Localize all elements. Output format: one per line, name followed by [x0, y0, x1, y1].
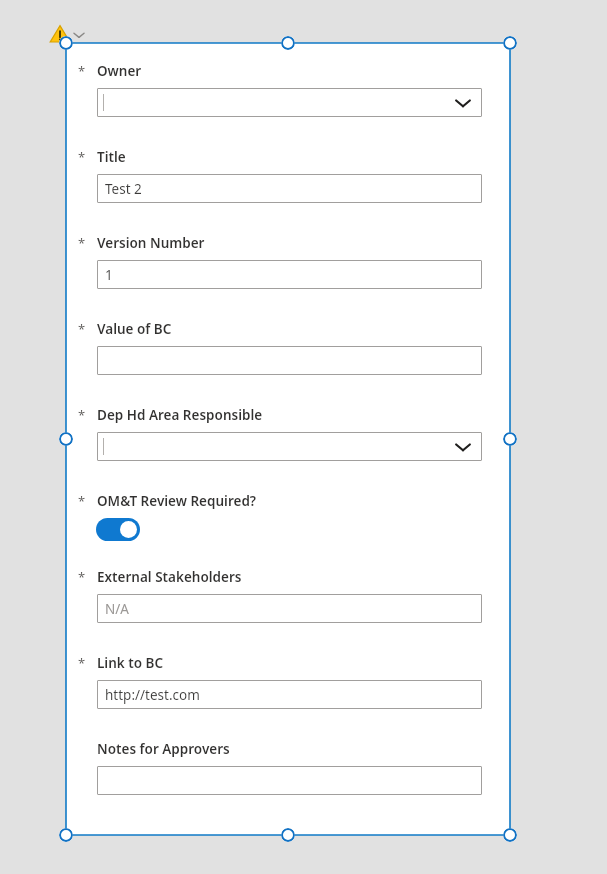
button[interactable]: OM&T Review Required toggle — [96, 518, 140, 541]
button[interactable]: Open Dep Hd Area Responsible dropdown — [97, 432, 482, 461]
button[interactable]: Open Owner dropdown — [454, 94, 472, 112]
staticText: Notes for Approvers — [97, 740, 230, 758]
button[interactable] — [97, 346, 482, 375]
button[interactable]: N/A — [97, 594, 482, 623]
staticText: N/A — [105, 600, 129, 618]
staticText: * — [78, 406, 86, 424]
staticText: * — [78, 234, 86, 252]
staticText: * — [78, 654, 86, 672]
staticText: Owner — [97, 62, 142, 80]
button[interactable]: Open Dep Hd Area Responsible dropdown — [454, 438, 472, 456]
button[interactable]: Resize handle — [59, 36, 73, 50]
staticText: * — [78, 148, 86, 166]
staticText: Version Number — [97, 234, 205, 252]
button[interactable]: Resize handle — [503, 828, 517, 842]
staticText: Value of BC — [97, 320, 172, 338]
button[interactable]: Resize handle — [503, 36, 517, 50]
button[interactable]: Resize handle — [281, 36, 295, 50]
button[interactable]: Open Owner dropdown — [97, 88, 482, 117]
button[interactable]: http://test.com — [97, 680, 482, 709]
button[interactable]: Resize handle — [59, 828, 73, 842]
button[interactable]: Resize handle — [503, 432, 517, 446]
staticText: * — [78, 320, 86, 338]
button[interactable] — [97, 766, 482, 795]
staticText: External Stakeholders — [97, 568, 242, 586]
button[interactable] — [66, 43, 510, 835]
staticText: Title — [97, 148, 126, 166]
button[interactable]: Warning — [50, 24, 70, 44]
staticText: * — [78, 568, 86, 586]
button[interactable]: Expand — [70, 26, 88, 44]
staticText: * — [78, 492, 97, 510]
staticText: 1 — [105, 266, 113, 284]
staticText: Link to BC — [97, 654, 164, 672]
staticText: http://test.com — [105, 686, 200, 704]
staticText: Dep Hd Area Responsible — [97, 406, 263, 424]
button[interactable]: Test 2 — [97, 174, 482, 203]
staticText: Test 2 — [105, 180, 142, 198]
button[interactable]: Resize handle — [281, 828, 295, 842]
button[interactable]: 1 — [97, 260, 482, 289]
staticText: * — [78, 62, 86, 80]
button[interactable]: Resize handle — [59, 432, 73, 446]
staticText: OM&T Review Required? — [97, 492, 257, 510]
